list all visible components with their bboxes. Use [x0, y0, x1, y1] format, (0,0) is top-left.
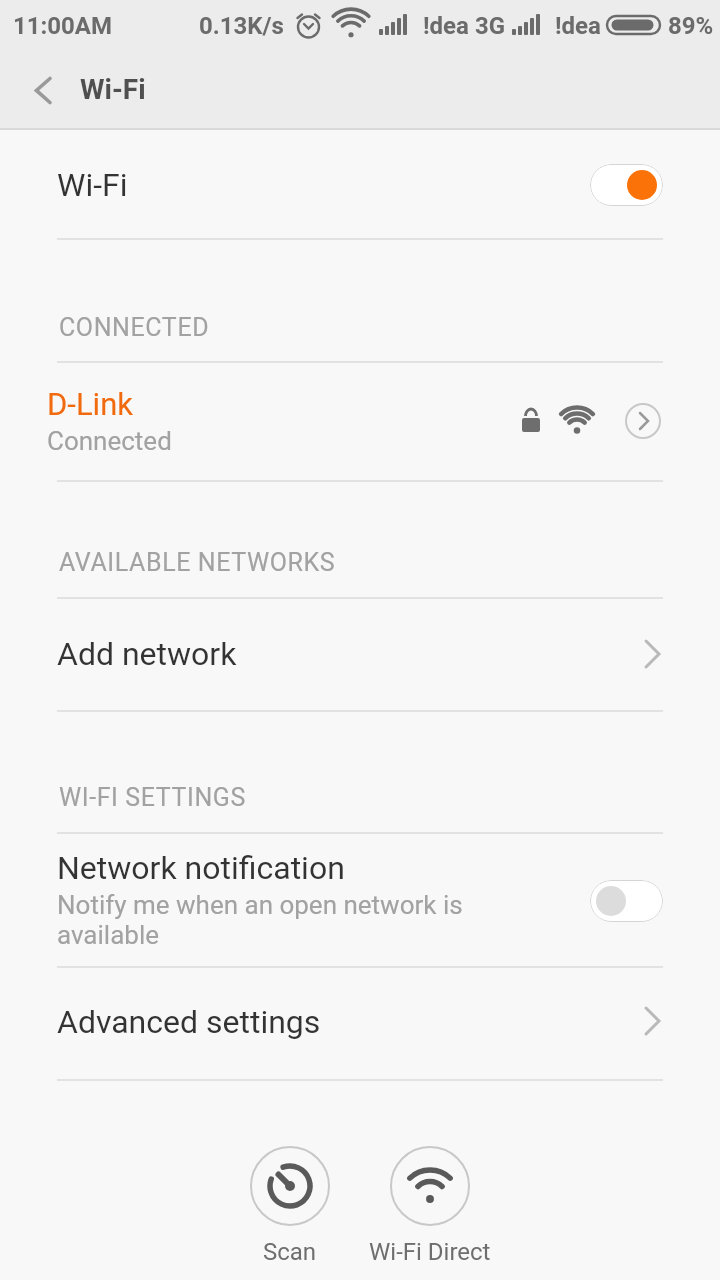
staticText: Notify me when an open network is	[57, 890, 463, 920]
staticText: Add network	[57, 635, 237, 673]
staticText: Connected	[47, 426, 172, 456]
button[interactable]	[590, 880, 663, 922]
button[interactable]	[0, 967, 720, 1079]
staticText: Wi-Fi Direct	[369, 1238, 491, 1266]
staticText: 11:00AM	[13, 12, 113, 40]
staticText: CONNECTED	[59, 313, 210, 342]
staticText: WI-FI SETTINGS	[59, 783, 246, 812]
button[interactable]	[0, 362, 720, 480]
button[interactable]	[18, 60, 78, 120]
staticText: !dea 3G	[423, 12, 505, 40]
staticText: D-Link	[47, 386, 133, 422]
staticText: Wi-Fi	[57, 166, 128, 204]
staticText: 89%	[668, 12, 714, 40]
button[interactable]	[240, 1137, 340, 1277]
button[interactable]	[0, 131, 720, 238]
staticText: Network notification	[57, 849, 345, 887]
button[interactable]	[0, 833, 720, 966]
button[interactable]	[380, 1137, 480, 1277]
staticText: Advanced settings	[57, 1003, 321, 1041]
staticText: Wi-Fi	[80, 73, 146, 106]
staticText: Scan	[263, 1238, 317, 1266]
staticText: AVAILABLE NETWORKS	[59, 548, 336, 577]
button[interactable]	[590, 164, 663, 206]
staticText: available	[57, 920, 159, 950]
staticText: !dea	[555, 12, 601, 40]
button[interactable]	[0, 598, 720, 710]
staticText: 0.13K/s	[199, 12, 284, 40]
